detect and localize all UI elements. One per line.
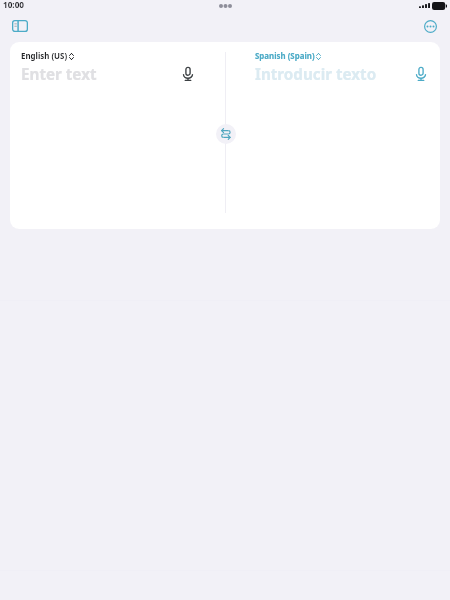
staticText: Enter text: [21, 64, 97, 85]
button[interactable]: Swap languages: [216, 124, 236, 144]
staticText: Introducir texto: [255, 64, 377, 85]
button[interactable]: Menu: [4, 12, 36, 40]
staticText: English (US): [21, 51, 68, 62]
button[interactable]: Voice input: [177, 63, 199, 85]
staticText: Spanish (Spain): [255, 51, 315, 62]
button[interactable]: Voice input: [410, 63, 432, 85]
button[interactable]: More options: [414, 12, 446, 40]
staticText: 10:00: [3, 0, 25, 10]
